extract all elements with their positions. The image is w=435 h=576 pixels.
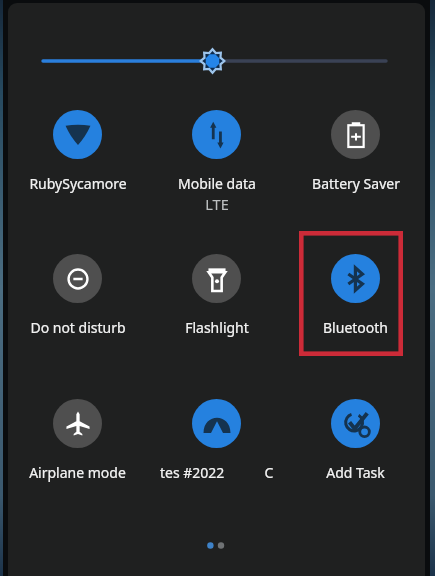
button[interactable]: RubySycamore xyxy=(8,110,147,193)
button[interactable]: Mobile data xyxy=(147,110,286,213)
staticText: Add Task xyxy=(326,463,385,482)
button[interactable]: Battery Saver xyxy=(286,110,425,193)
button[interactable]: Brightness xyxy=(8,41,425,81)
staticText: Flashlight xyxy=(185,318,249,337)
button[interactable]: Bluetooth selected xyxy=(299,231,403,356)
button[interactable]: Airplane mode xyxy=(8,399,147,482)
button[interactable]: Bluetooth xyxy=(286,254,425,337)
staticText: Do not disturb xyxy=(30,318,126,337)
button[interactable]: Add Task xyxy=(286,399,425,482)
staticText: Airplane mode xyxy=(29,463,126,482)
button[interactable]: tes #2022 C xyxy=(147,399,286,480)
button[interactable]: Do not disturb xyxy=(8,254,147,337)
staticText: LTE xyxy=(205,194,229,214)
staticText: Battery Saver xyxy=(312,174,400,193)
staticText: Bluetooth xyxy=(323,318,388,337)
staticText: tes #2022 C xyxy=(160,463,274,480)
staticText: RubySycamore xyxy=(29,174,127,193)
button[interactable]: Flashlight xyxy=(147,254,286,337)
staticText: Mobile data xyxy=(178,174,256,193)
